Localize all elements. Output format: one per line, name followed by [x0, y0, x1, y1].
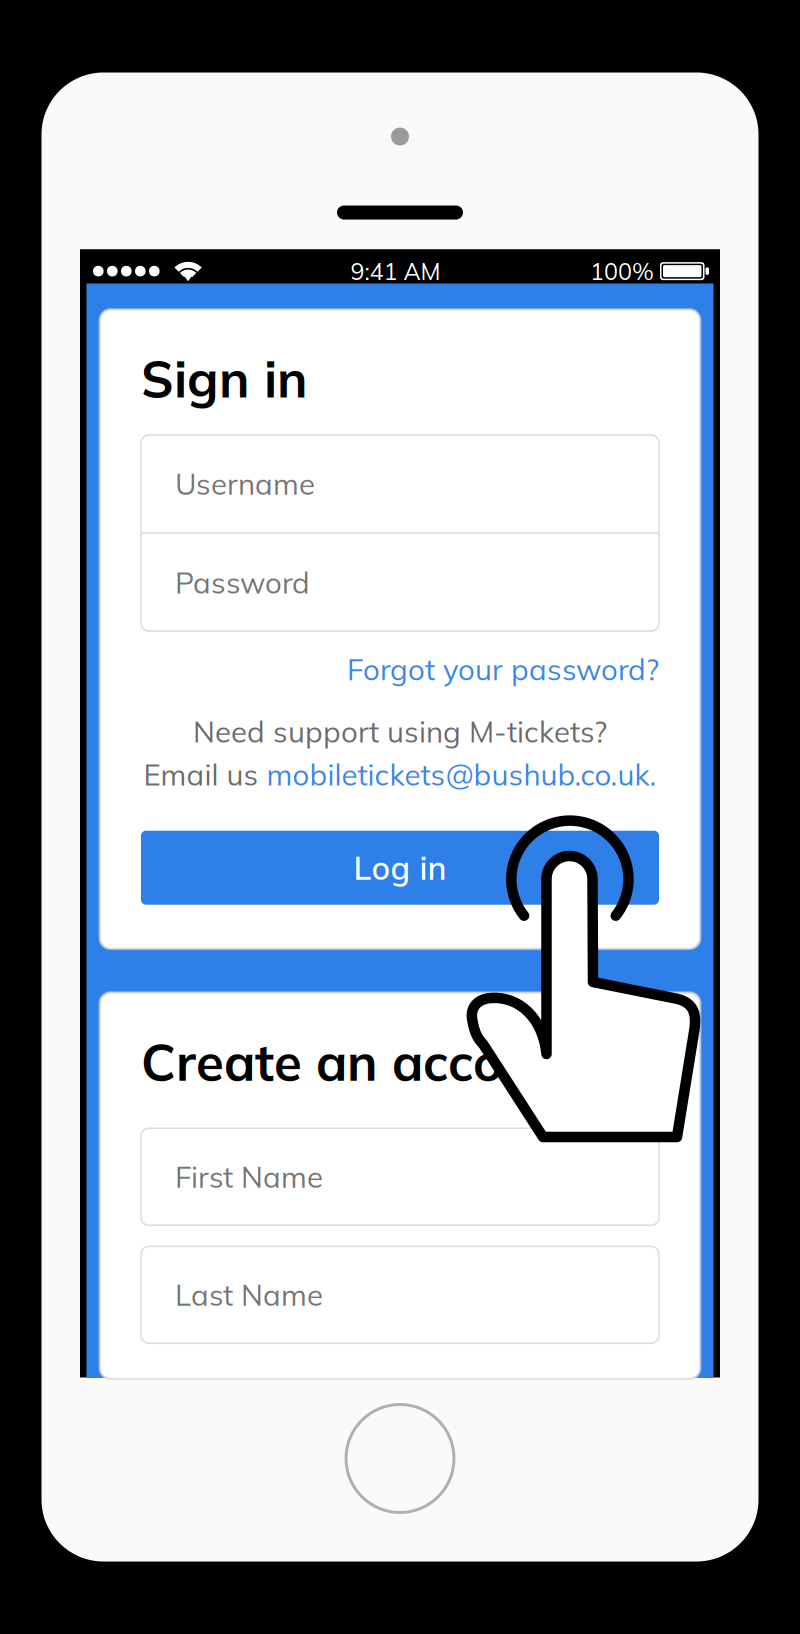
staticText: 9:41 AM	[351, 256, 441, 286]
staticText: Email us	[143, 756, 266, 793]
staticText: First Name	[175, 1158, 323, 1195]
staticText: Forgot your password?	[347, 651, 659, 687]
staticText: Sign in	[141, 346, 308, 410]
staticText: 100%	[590, 256, 654, 286]
staticText: mobiletickets@bushub.co.uk.	[266, 756, 656, 793]
staticText: Last Name	[175, 1276, 323, 1313]
button[interactable]: Log in	[141, 831, 659, 905]
staticText: Password	[175, 564, 310, 601]
staticText: Need support using M-tickets?	[193, 713, 607, 750]
staticText: Log in	[353, 848, 446, 888]
staticText: Username	[175, 465, 315, 502]
staticText: Create an account	[141, 1030, 583, 1093]
button[interactable]: Forgot your password?	[141, 647, 659, 691]
